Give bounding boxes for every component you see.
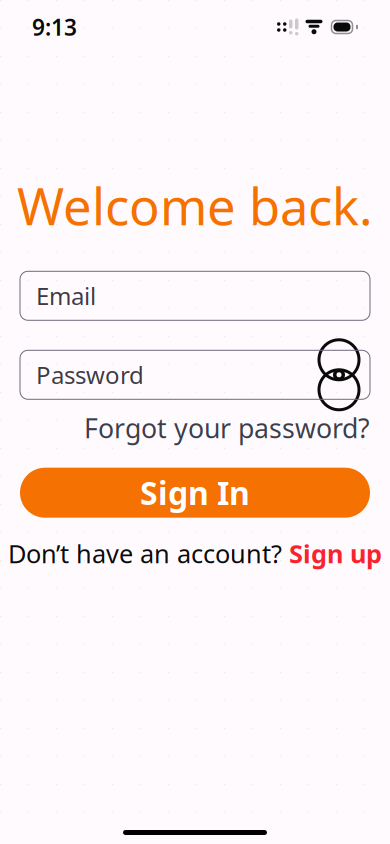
staticText: Sign In <box>140 471 250 514</box>
staticText: Welcome back. <box>17 172 373 239</box>
button[interactable]: Email <box>20 271 370 320</box>
button[interactable]: Sign In <box>20 468 370 518</box>
button[interactable]: Password <box>20 350 370 399</box>
staticText: Email <box>36 280 96 312</box>
staticText: Forgot your password? <box>84 410 370 446</box>
button[interactable]: Sign up <box>289 537 382 570</box>
staticText: Password <box>36 359 144 391</box>
button[interactable]: Forgot your password? <box>84 410 370 446</box>
staticText: Sign up <box>289 537 382 570</box>
staticText: Don’t have an account? <box>8 537 282 570</box>
staticText: 9:13 <box>32 12 77 42</box>
